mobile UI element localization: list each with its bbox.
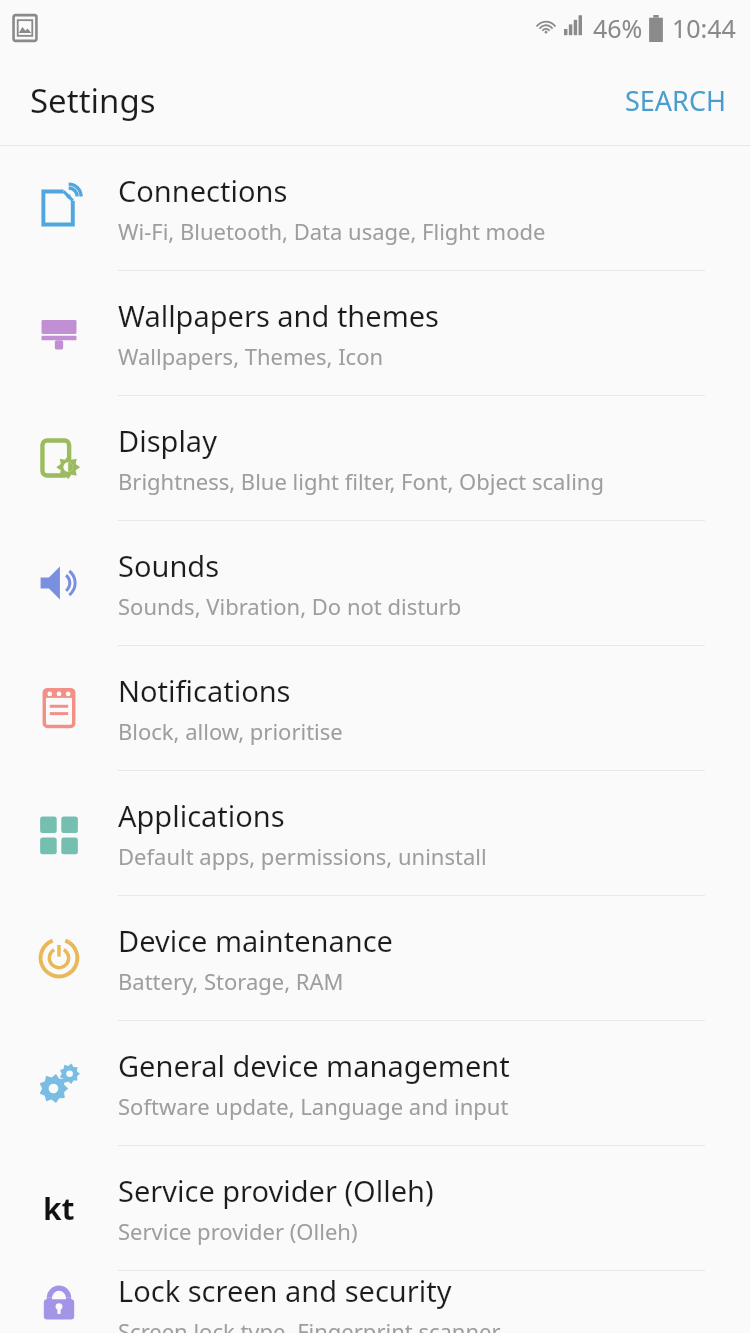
staticText: Wallpapers, Themes, Icon [118,341,384,371]
staticText: SEARCH [625,82,726,119]
other: Lock screen and security [36,1279,82,1325]
button[interactable]: SEARCH [601,64,750,137]
staticText: Notifications [118,671,291,710]
staticText: General device management [118,1046,510,1085]
staticText: Device maintenance [118,921,393,960]
staticText: 10:44 [672,11,736,45]
button[interactable]: Display [0,396,750,520]
other: Device maintenance [36,935,82,981]
staticText: Settings [30,78,156,123]
other: Wallpapers and themes [36,310,82,356]
other: Connections [36,185,82,231]
staticText: Brightness, Blue light filter, Font, Obj… [118,466,604,496]
staticText: Screen lock type, Fingerprint scanner [118,1316,501,1333]
staticText: Display [118,421,217,460]
button[interactable]: Sounds [0,521,750,645]
button[interactable]: Lock screen and security [0,1271,750,1333]
other: General device management [36,1060,82,1106]
staticText: Battery, Storage, RAM [118,966,344,996]
button[interactable]: Service provider [0,1146,750,1270]
staticText: Service provider (Olleh) [118,1171,434,1210]
staticText: Wi-Fi, Bluetooth, Data usage, Flight mod… [118,216,546,246]
staticText: Sounds, Vibration, Do not disturb [118,591,462,621]
other: Display [36,435,82,481]
staticText: Wallpapers and themes [118,296,440,335]
other: Service provider [36,1185,82,1231]
staticText: Lock screen and security [118,1271,452,1310]
button[interactable]: Connections [0,146,750,270]
staticText: Service provider (Olleh) [118,1216,358,1246]
button[interactable]: Device maintenance [0,896,750,1020]
other: Sounds [36,560,82,606]
other: Applications [36,810,82,856]
other: Notifications [36,685,82,731]
staticText: Block, allow, prioritise [118,716,343,746]
button[interactable]: Applications [0,771,750,895]
staticText: Sounds [118,546,220,585]
button[interactable]: General device management [0,1021,750,1145]
staticText: 46% [593,11,643,45]
staticText: Connections [118,171,288,210]
button[interactable]: Wallpapers and themes [0,271,750,395]
staticText: kt [43,1188,75,1229]
staticText: Applications [118,796,285,835]
staticText: Default apps, permissions, uninstall [118,841,487,871]
button[interactable]: Notifications [0,646,750,770]
staticText: Software update, Language and input [118,1091,509,1121]
